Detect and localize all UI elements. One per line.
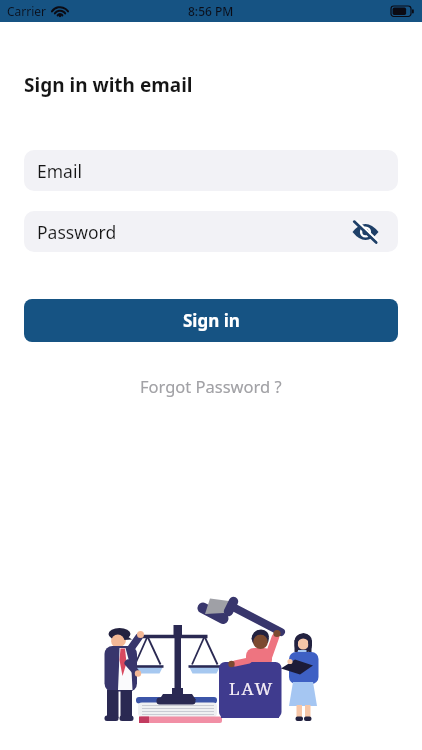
- button[interactable]: Email: [24, 150, 398, 191]
- staticText: Email: [37, 159, 82, 183]
- button[interactable]: Password: [24, 211, 398, 252]
- staticText: Carrier: [7, 3, 47, 19]
- staticText: Forgot Password ?: [140, 375, 282, 397]
- button[interactable]: Forgot Password ?: [140, 375, 282, 397]
- button[interactable]: Sign in: [24, 299, 398, 342]
- staticText: Password: [37, 220, 117, 244]
- staticText: Sign in: [183, 309, 240, 332]
- staticText: LAW: [229, 677, 275, 700]
- staticText: Sign in with email: [24, 72, 193, 98]
- staticText: 8:56 PM: [188, 3, 234, 19]
